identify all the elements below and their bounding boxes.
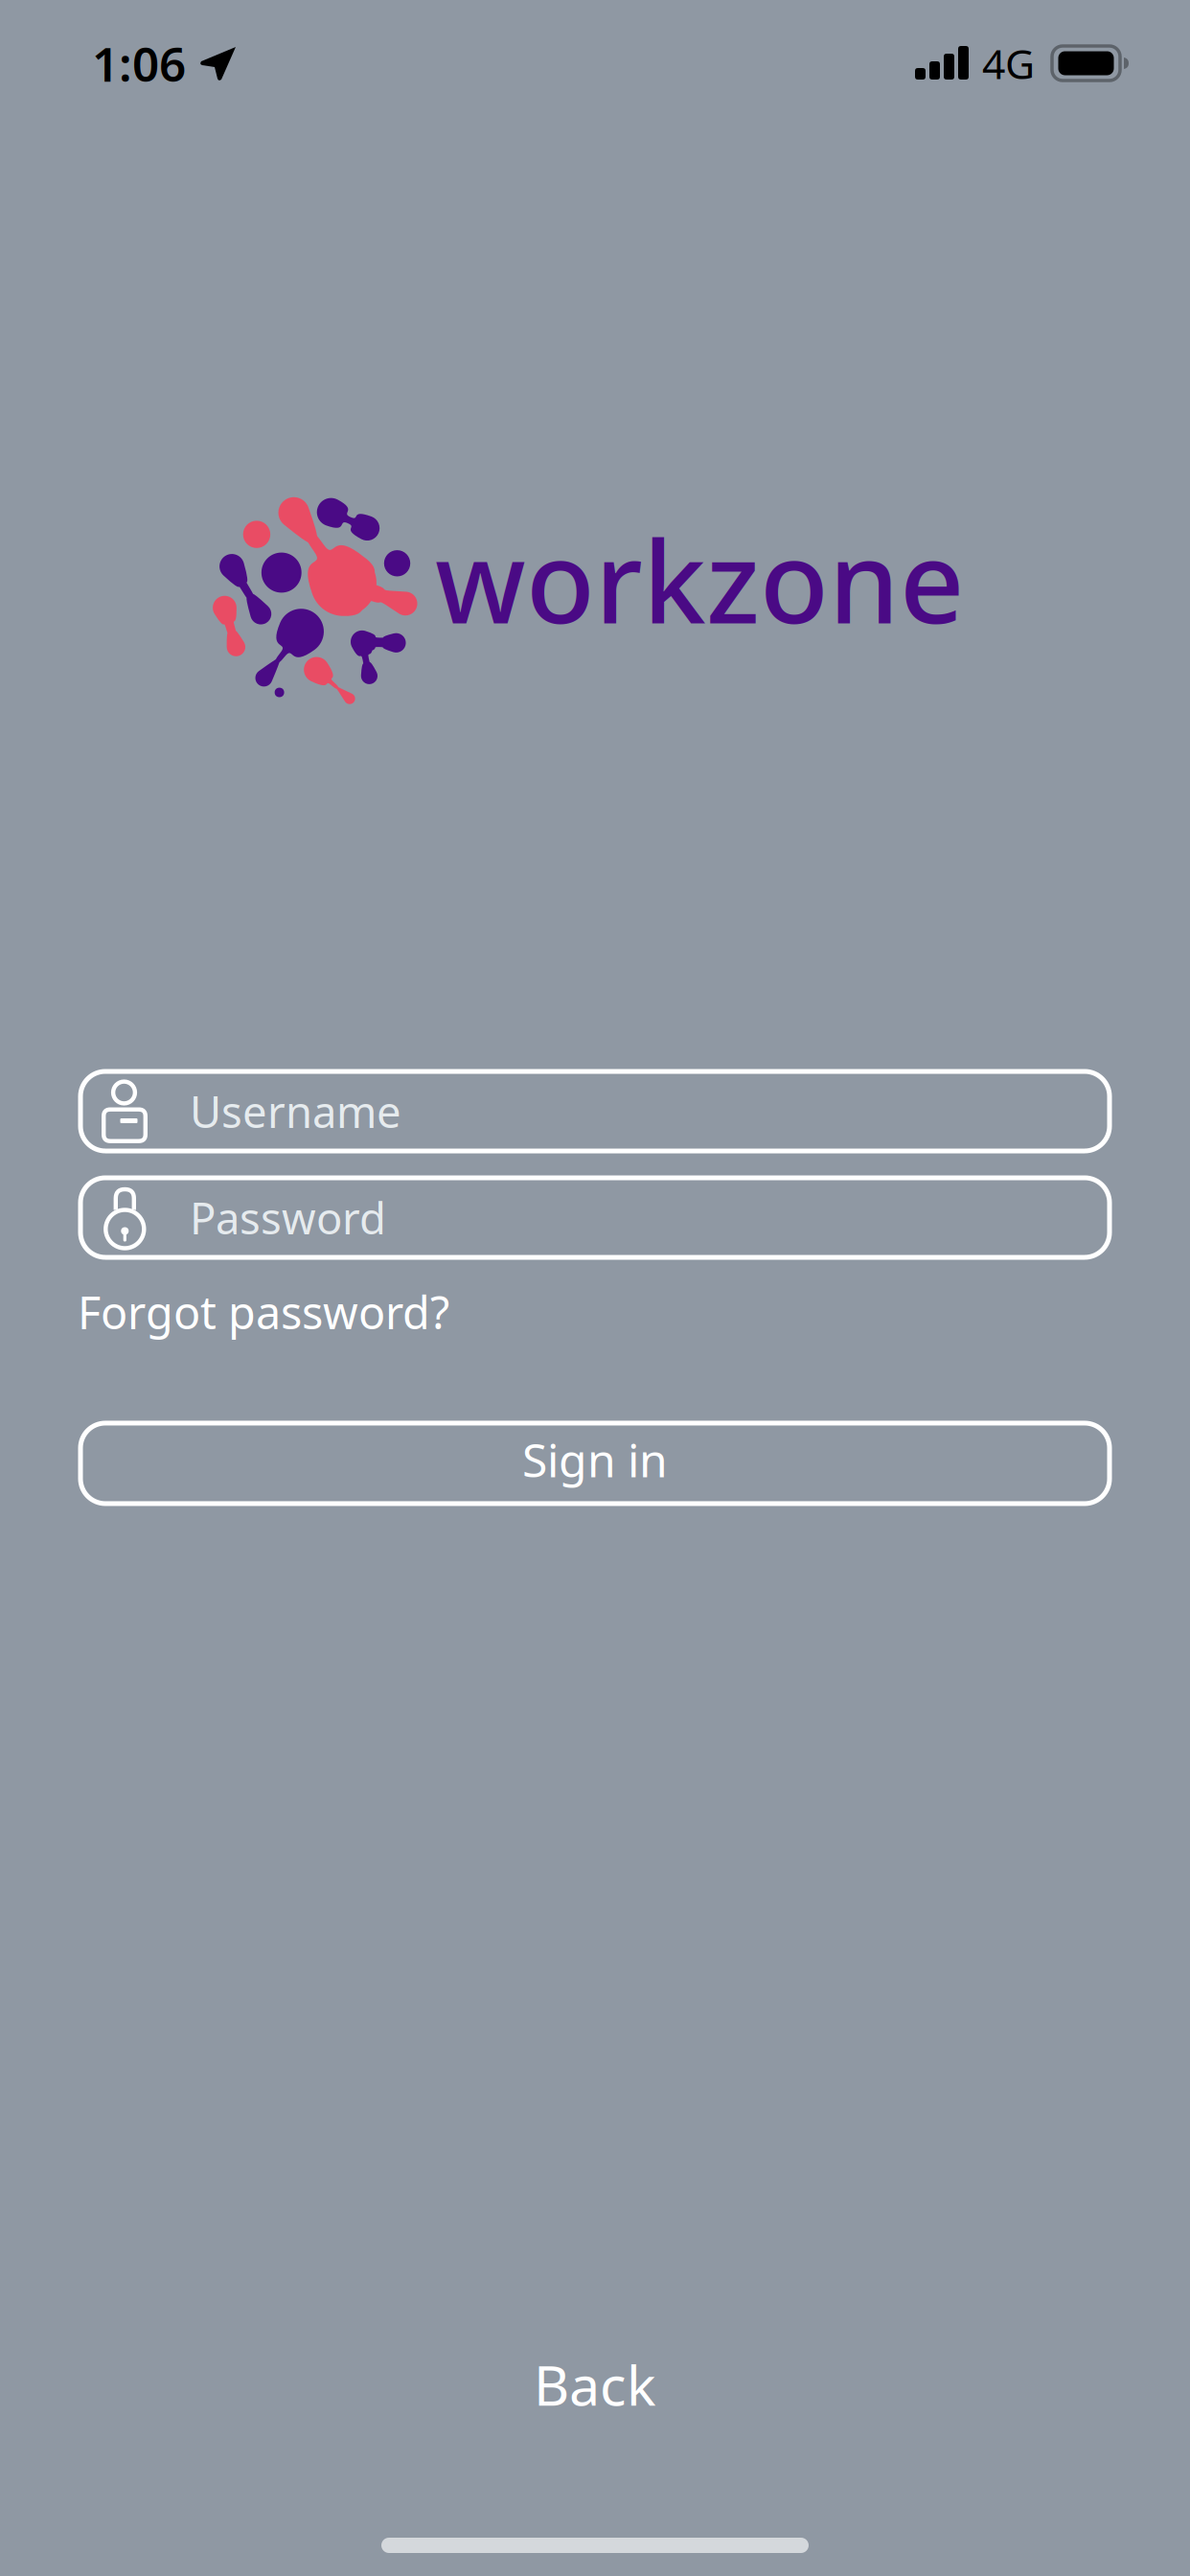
staticText: 1:06 [92,32,186,95]
button[interactable]: Username [80,1071,1110,1151]
staticText: Back [534,2348,656,2421]
staticText: Password [190,1189,386,1246]
staticText: Sign in [522,1429,668,1490]
button[interactable]: Sign in [0,1423,1190,1504]
staticText: Forgot password? [78,1282,449,1342]
button[interactable]: Forgot password? [78,1276,449,1348]
button[interactable]: Password [80,1178,1110,1257]
staticText: 4G [982,36,1035,90]
staticText: Username [190,1082,401,1140]
button[interactable]: Back [495,2334,695,2434]
staticText: workzone [435,505,964,654]
